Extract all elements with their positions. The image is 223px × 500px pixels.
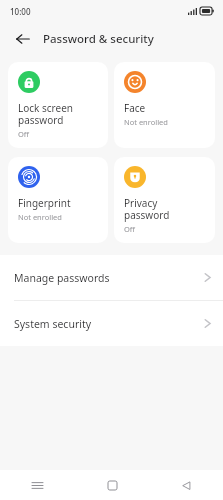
staticText: Face	[124, 101, 146, 115]
staticText: Fingerprint	[18, 196, 71, 210]
staticText: Password & security	[43, 31, 154, 47]
button[interactable]: Privacy password	[114, 157, 215, 243]
staticText: Off	[18, 129, 30, 139]
button[interactable]: Recents	[0, 470, 75, 500]
staticText: System security	[14, 317, 204, 331]
button[interactable]: Lock screen password	[8, 62, 108, 148]
button[interactable]: System security	[0, 301, 223, 346]
staticText: Manage passwords	[14, 271, 204, 285]
staticText: Lock screen password	[18, 101, 74, 127]
button[interactable]: Fingerprint	[8, 157, 108, 243]
staticText: 10:00	[10, 6, 31, 17]
button[interactable]: Face	[114, 62, 215, 148]
button[interactable]: Back	[149, 470, 223, 500]
staticText: Privacy password	[124, 196, 170, 222]
staticText: Off	[124, 224, 136, 234]
button[interactable]: Back	[12, 28, 34, 50]
button[interactable]: Home	[75, 470, 149, 500]
button[interactable]: Manage passwords	[0, 255, 223, 300]
staticText: Not enrolled	[18, 212, 62, 222]
staticText: Not enrolled	[124, 117, 168, 127]
